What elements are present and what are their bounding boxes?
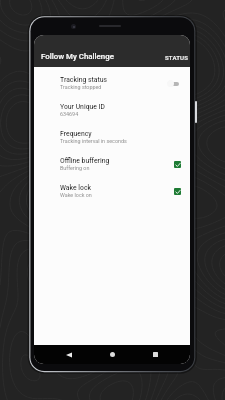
staticText: Tracking stopped (60, 84, 102, 90)
button[interactable]: Your Unique ID (34, 96, 190, 123)
staticText: STATUS (165, 54, 189, 61)
staticText: Tracking status (60, 76, 107, 84)
button[interactable]: Offline buffering (34, 150, 190, 177)
button[interactable]: Tracking status switch (166, 79, 179, 88)
staticText: Your Unique ID (60, 103, 105, 111)
staticText: Follow My Challenge (41, 52, 114, 61)
staticText: Wake lock (60, 184, 92, 192)
button[interactable]: Frequency (34, 123, 190, 150)
staticText: Offline buffering (60, 157, 110, 165)
button[interactable]: Power button (195, 101, 197, 123)
button[interactable]: Recents (146, 345, 165, 364)
staticText: Frequency (60, 130, 92, 138)
button[interactable]: Tracking status (34, 69, 190, 96)
staticText: 634694 (60, 111, 79, 117)
button[interactable]: Wake lock (34, 177, 190, 204)
staticText: Buffering on (60, 165, 90, 171)
button[interactable]: Back (59, 345, 78, 364)
staticText: Tracking interval in seconds (60, 138, 127, 144)
staticText: Wake lock on (60, 192, 92, 198)
button[interactable]: Home (103, 345, 122, 364)
button[interactable]: STATUS (164, 49, 190, 66)
